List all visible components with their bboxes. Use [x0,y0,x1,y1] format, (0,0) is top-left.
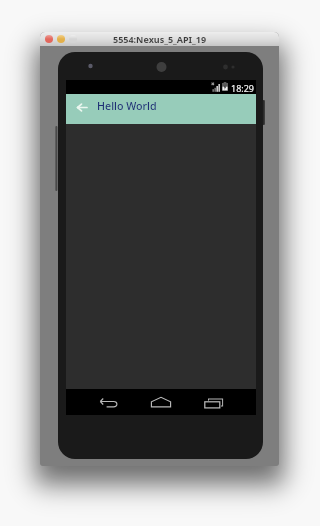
button[interactable]: Navigate up [71,97,92,118]
button[interactable]: Window button [57,35,65,43]
button[interactable]: Recent apps [193,389,233,415]
staticText: 18:29 [231,82,255,94]
staticText: 5554:Nexus_5_API_19 [113,33,207,45]
button[interactable]: Window button [69,35,77,43]
button[interactable]: Back [88,389,128,415]
button[interactable]: Window button [45,35,53,43]
staticText: Hello World [97,99,157,114]
button[interactable]: Home [141,389,181,415]
